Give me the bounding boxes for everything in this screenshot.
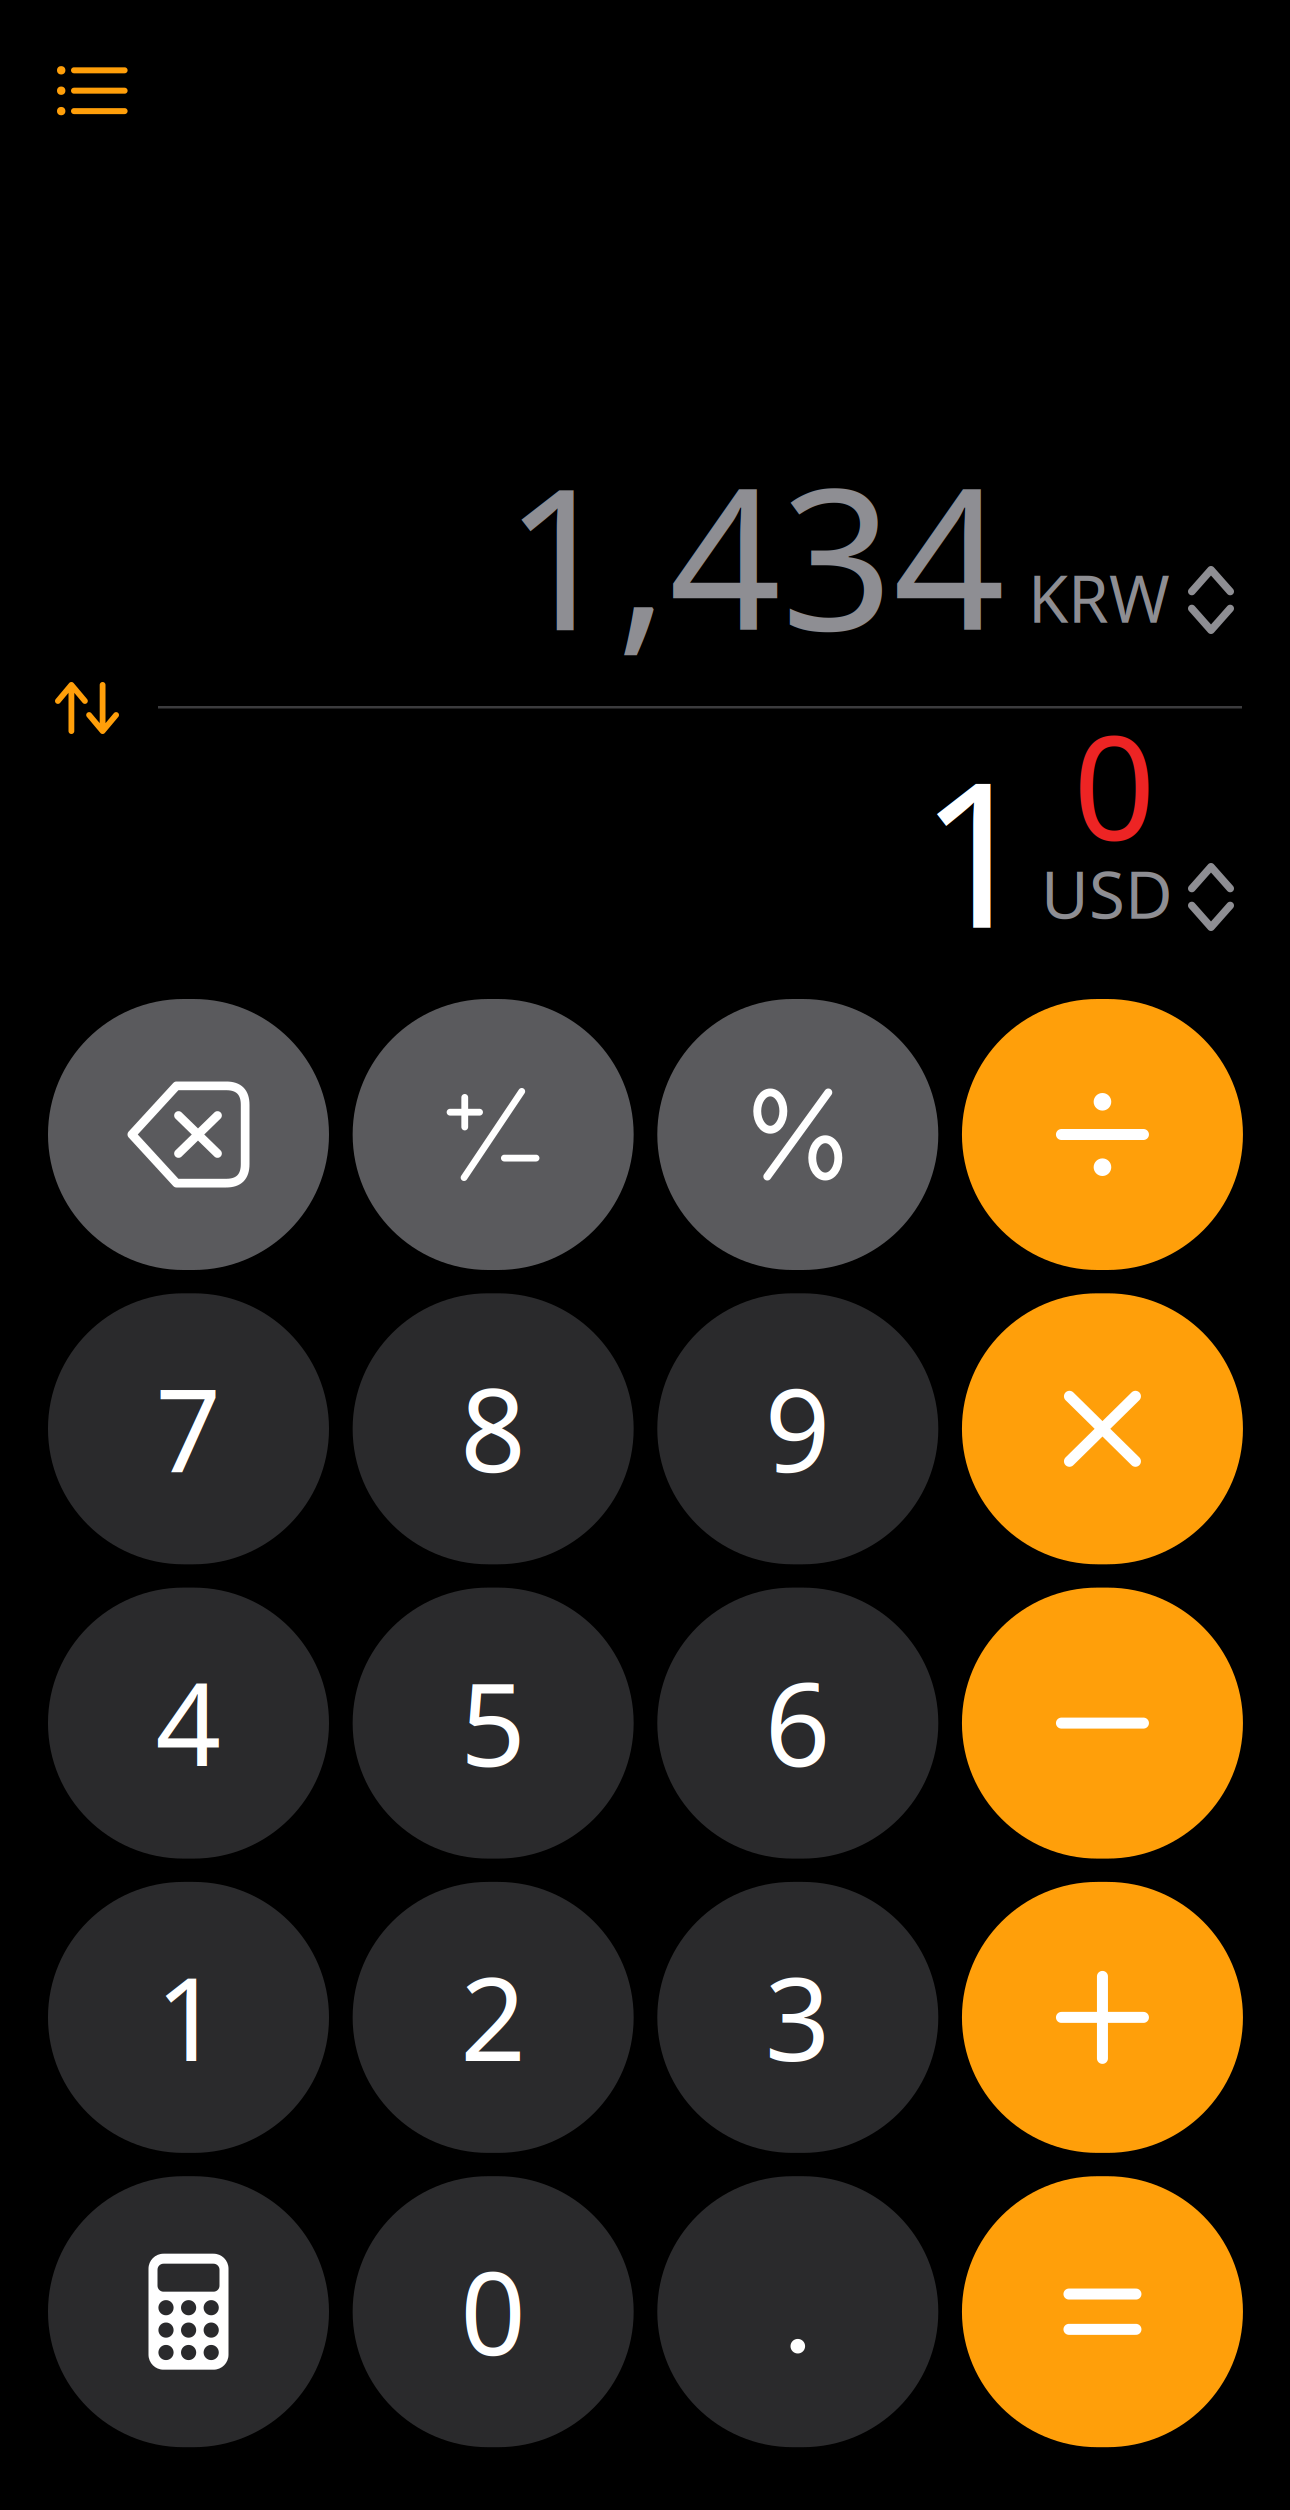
button[interactable]: Change source currency, USD — [970, 850, 1233, 942]
staticText: USD — [1041, 850, 1173, 937]
button[interactable] — [48, 2176, 329, 2447]
button[interactable] — [962, 1293, 1243, 1564]
staticText: 8 — [460, 1352, 526, 1504]
button[interactable]: 8 — [353, 1293, 634, 1564]
button[interactable]: Change target currency, KRW — [970, 554, 1233, 646]
button[interactable]: Swap currencies — [12, 638, 162, 778]
button[interactable]: 5 — [353, 1588, 634, 1859]
staticText: 6 — [765, 1646, 831, 1798]
button[interactable]: 1 — [48, 1882, 329, 2153]
button[interactable] — [962, 999, 1243, 1270]
button[interactable]: Currency list — [17, 26, 165, 155]
button[interactable] — [962, 1588, 1243, 1859]
staticText: 3 — [765, 1940, 831, 2093]
button[interactable]: Amount 1 — [834, 716, 1034, 986]
button[interactable]: 6 — [657, 1588, 938, 1859]
staticText: 4 — [155, 1646, 221, 1798]
staticText: 2 — [460, 1940, 526, 2093]
button[interactable]: 9 — [657, 1293, 938, 1564]
button[interactable]: Converted amount 1,434 KRW — [445, 424, 1005, 694]
staticText: 0 — [1073, 689, 1155, 880]
staticText: 7 — [155, 1352, 221, 1504]
staticText: 1,434 — [504, 424, 1005, 684]
button[interactable] — [657, 2176, 938, 2447]
button[interactable]: 0 — [353, 2176, 634, 2447]
staticText: 1 — [155, 1940, 221, 2093]
button[interactable]: 4 — [48, 1588, 329, 1859]
staticText: 0 — [460, 2235, 526, 2387]
button[interactable]: 2 — [353, 1882, 634, 2153]
staticText: KRW — [1028, 554, 1170, 641]
button[interactable] — [353, 999, 634, 1270]
button[interactable]: 7 — [48, 1293, 329, 1564]
button[interactable] — [962, 1882, 1243, 2153]
button[interactable]: 3 — [657, 1882, 938, 2153]
button[interactable] — [962, 2176, 1243, 2447]
staticText: 9 — [765, 1352, 831, 1504]
button[interactable] — [657, 999, 938, 1270]
staticText: 1 — [919, 716, 1034, 983]
staticText: 5 — [460, 1646, 526, 1798]
button[interactable] — [48, 999, 329, 1270]
